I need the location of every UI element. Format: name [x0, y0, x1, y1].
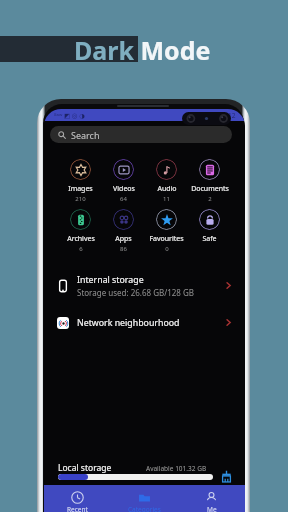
button[interactable]: Network neighbourhood [44, 304, 245, 341]
button[interactable]: Audio [145, 159, 188, 203]
staticText: Favourites [149, 234, 184, 244]
staticText: 6 [79, 245, 83, 253]
staticText: Categories [128, 505, 161, 512]
button[interactable]: Documents [188, 159, 231, 203]
staticText: 64 [120, 195, 127, 203]
staticText: Archives [67, 234, 95, 244]
staticText: Videos [113, 184, 135, 194]
button[interactable]: Clean up storage [220, 470, 233, 483]
button[interactable]: Safe [188, 209, 231, 253]
staticText: Recent [67, 505, 88, 512]
staticText: Network neighbourhood [77, 317, 180, 329]
staticText: 0 [165, 245, 169, 253]
staticText: Local storage [58, 462, 112, 474]
button[interactable]: Me [178, 485, 245, 512]
button[interactable]: Recent [44, 485, 111, 512]
button[interactable]: Archives [59, 209, 102, 253]
button[interactable]: Search [50, 126, 232, 143]
staticText: Apps [115, 234, 132, 244]
staticText: Dark [74, 33, 134, 65]
staticText: 2 [208, 195, 212, 203]
staticText: Mode [134, 33, 211, 65]
staticText: Internal storage [77, 274, 144, 286]
button[interactable]: Apps [102, 209, 145, 253]
staticText: Storage used: 26.68 GB/128 GB [77, 287, 195, 298]
staticText: 11 [163, 195, 170, 203]
button[interactable]: Internal storage [44, 267, 245, 304]
staticText: Documents [191, 184, 229, 194]
staticText: Search [71, 129, 100, 141]
staticText: 86 [120, 245, 127, 253]
button[interactable]: Favourites [145, 209, 188, 253]
staticText: ⬡ ✻ ⯈ ▮▮ 10:12 [187, 111, 236, 120]
button[interactable]: Videos [102, 159, 145, 203]
staticText: Me [207, 505, 217, 512]
staticText: 210 [75, 195, 86, 203]
staticText: Safe [202, 234, 217, 244]
button[interactable]: Categories [111, 485, 178, 512]
staticText: Images [68, 184, 93, 194]
staticText: ᵟᵃʷ ◩ ◎ ◑ [54, 111, 85, 120]
button[interactable]: Images [59, 159, 102, 203]
staticText: Audio [157, 184, 177, 194]
staticText: Available 101.32 GB [146, 464, 207, 473]
